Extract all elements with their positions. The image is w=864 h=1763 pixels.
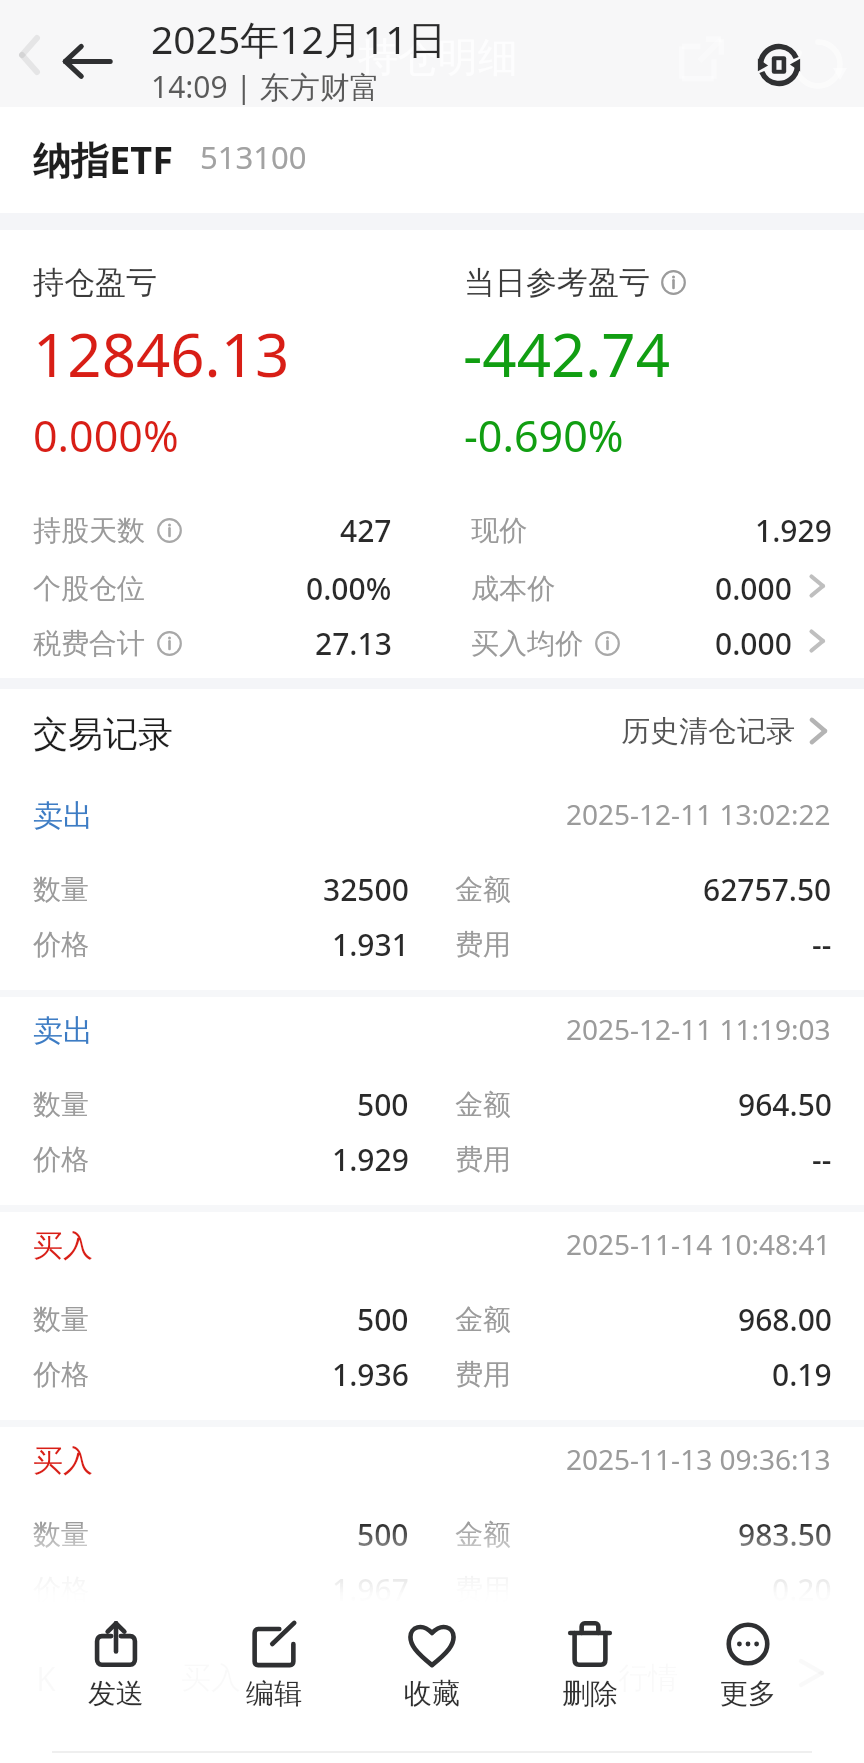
- button[interactable]: 买入: [0, 1435, 864, 1640]
- staticText: 价格: [33, 1142, 89, 1177]
- staticText: 收藏: [404, 1676, 460, 1711]
- staticText: 32500: [323, 869, 409, 910]
- staticText: 价格: [33, 927, 89, 962]
- staticText: 0.000: [715, 623, 792, 664]
- staticText: 费用: [455, 1142, 511, 1177]
- staticText: 427: [340, 510, 392, 551]
- staticText: 500: [357, 1084, 409, 1125]
- staticText: 交易记录: [33, 712, 173, 756]
- staticText: -442.74: [463, 313, 670, 395]
- button[interactable]: Back: [53, 27, 123, 96]
- staticText: 买入均价: [471, 626, 583, 661]
- staticText: 数量: [33, 1302, 89, 1337]
- staticText: 买入: [33, 1227, 93, 1265]
- button[interactable]: 删除: [511, 1622, 669, 1711]
- staticText: 费用: [455, 1357, 511, 1392]
- staticText: 964.50: [738, 1084, 832, 1125]
- staticText: 现价: [471, 513, 527, 548]
- staticText: 0.000: [715, 568, 792, 609]
- staticText: 27.13: [315, 623, 392, 664]
- button[interactable]: 卖出: [0, 1005, 864, 1210]
- staticText: 数量: [33, 1087, 89, 1122]
- staticText: 500: [357, 1299, 409, 1340]
- button[interactable]: Rotate screen: [755, 41, 803, 89]
- staticText: 968.00: [738, 1299, 832, 1340]
- staticText: 2025-11-14 10:48:41: [566, 1225, 831, 1263]
- staticText: 持仓盈亏: [33, 263, 157, 302]
- staticText: --: [812, 924, 832, 965]
- staticText: 2025年12月11日: [151, 12, 447, 65]
- button[interactable]: 发送: [37, 1622, 195, 1711]
- staticText: 金额: [455, 872, 511, 907]
- staticText: 983.50: [738, 1514, 832, 1555]
- staticText: 费用: [455, 927, 511, 962]
- staticText: 卖出: [33, 1012, 93, 1050]
- staticText: 成本价: [471, 571, 555, 606]
- staticText: 个股仓位: [33, 571, 145, 606]
- staticText: 0.000%: [33, 406, 179, 465]
- staticText: 卖出: [33, 797, 93, 835]
- staticText: 买入: [33, 1442, 93, 1480]
- staticText: 0.19: [772, 1354, 832, 1395]
- staticText: 金额: [455, 1087, 511, 1122]
- staticText: 编辑: [246, 1676, 302, 1711]
- staticText: 金额: [455, 1302, 511, 1337]
- staticText: 1.931: [332, 924, 409, 965]
- staticText: 金额: [455, 1517, 511, 1552]
- staticText: 发送: [88, 1676, 144, 1711]
- staticText: 513100: [200, 136, 307, 178]
- staticText: 1.936: [332, 1354, 409, 1395]
- staticText: --: [812, 1139, 832, 1180]
- staticText: 62757.50: [703, 869, 832, 910]
- staticText: 1.929: [755, 510, 832, 551]
- staticText: -0.690%: [464, 406, 624, 465]
- staticText: 历史清仓记录: [621, 713, 795, 750]
- staticText: 数量: [33, 1517, 89, 1552]
- staticText: 0.00%: [306, 568, 392, 609]
- staticText: 1.929: [332, 1139, 409, 1180]
- button[interactable]: 卖出: [0, 790, 864, 995]
- button[interactable]: 买入: [0, 1220, 864, 1425]
- staticText: 纳指ETF: [33, 133, 174, 185]
- staticText: 更多: [720, 1676, 776, 1711]
- staticText: 2025-12-11 11:19:03: [566, 1010, 831, 1048]
- staticText: 持股天数: [33, 513, 145, 548]
- staticText: 税费合计: [33, 626, 145, 661]
- staticText: 14:09 | 东方财富: [151, 66, 380, 107]
- staticText: 1.967: [332, 1569, 409, 1610]
- staticText: 500: [357, 1514, 409, 1555]
- staticText: 12846.13: [33, 313, 290, 395]
- button[interactable]: 历史清仓记录: [600, 700, 832, 762]
- staticText: 当日参考盈亏: [464, 263, 650, 302]
- staticText: 数量: [33, 872, 89, 907]
- staticText: 2025-12-11 13:02:22: [566, 795, 831, 833]
- button[interactable]: 更多: [669, 1622, 827, 1711]
- staticText: 删除: [562, 1676, 618, 1711]
- staticText: 持仓明细: [358, 32, 518, 82]
- button[interactable]: 收藏: [353, 1622, 511, 1711]
- staticText: 0.20: [772, 1569, 832, 1610]
- button[interactable]: 编辑: [195, 1622, 353, 1711]
- staticText: 2025-11-13 09:36:13: [566, 1440, 831, 1478]
- staticText: 价格: [33, 1357, 89, 1392]
